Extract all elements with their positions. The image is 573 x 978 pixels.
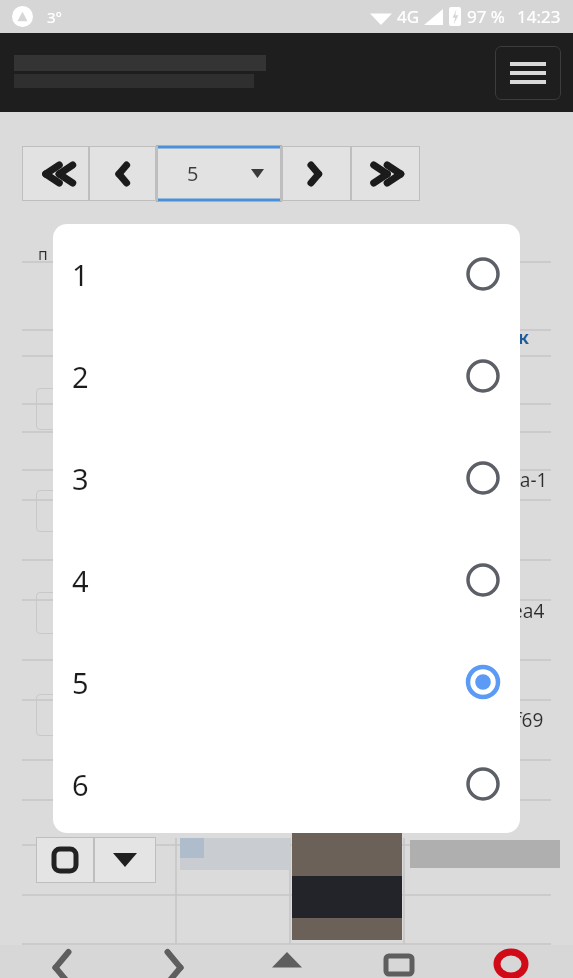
staticText: 5 bbox=[187, 160, 199, 187]
staticText: 2 bbox=[72, 357, 89, 396]
button[interactable]: 1 bbox=[53, 224, 520, 325]
button[interactable]: Last page bbox=[351, 146, 420, 201]
staticText: 3° bbox=[47, 7, 63, 27]
other: Next page bbox=[308, 160, 326, 188]
staticText: f69 bbox=[515, 707, 544, 733]
button[interactable]: Previous page bbox=[89, 146, 156, 201]
button[interactable]: 3 bbox=[53, 427, 520, 529]
other: First page bbox=[40, 160, 72, 188]
staticText: 1 bbox=[72, 255, 89, 294]
staticText: 3 bbox=[72, 459, 89, 498]
button[interactable]: 5 bbox=[156, 146, 282, 201]
button[interactable]: Select bbox=[36, 837, 94, 883]
button[interactable]: Back bbox=[12, 945, 112, 978]
button[interactable]: 6 bbox=[53, 733, 520, 833]
staticText: 14:23 bbox=[517, 5, 561, 28]
button[interactable]: Forward bbox=[124, 945, 224, 978]
button[interactable]: First page bbox=[22, 146, 89, 201]
button[interactable]: 4 bbox=[53, 529, 520, 631]
staticText: п bbox=[38, 243, 48, 265]
staticText: ea4 bbox=[512, 598, 545, 624]
staticText: ua-1 bbox=[508, 467, 548, 493]
other: Last page bbox=[370, 160, 402, 188]
staticText: к bbox=[518, 325, 530, 350]
button[interactable]: 2 bbox=[53, 325, 520, 427]
other: Previous page bbox=[114, 160, 132, 188]
staticText: 97 % bbox=[467, 5, 505, 28]
staticText: 6 bbox=[72, 765, 89, 804]
staticText: 4G bbox=[397, 5, 420, 28]
button[interactable]: Home bbox=[237, 945, 337, 978]
staticText: 5 bbox=[72, 663, 89, 702]
staticText: 4 bbox=[72, 561, 89, 600]
button[interactable]: Opera menu bbox=[461, 945, 561, 978]
button[interactable]: Tabs bbox=[349, 945, 449, 978]
button[interactable]: More options bbox=[94, 837, 156, 883]
button[interactable]: 5 bbox=[53, 631, 520, 733]
button[interactable]: Next page bbox=[282, 146, 351, 201]
button[interactable]: Menu bbox=[495, 46, 561, 100]
